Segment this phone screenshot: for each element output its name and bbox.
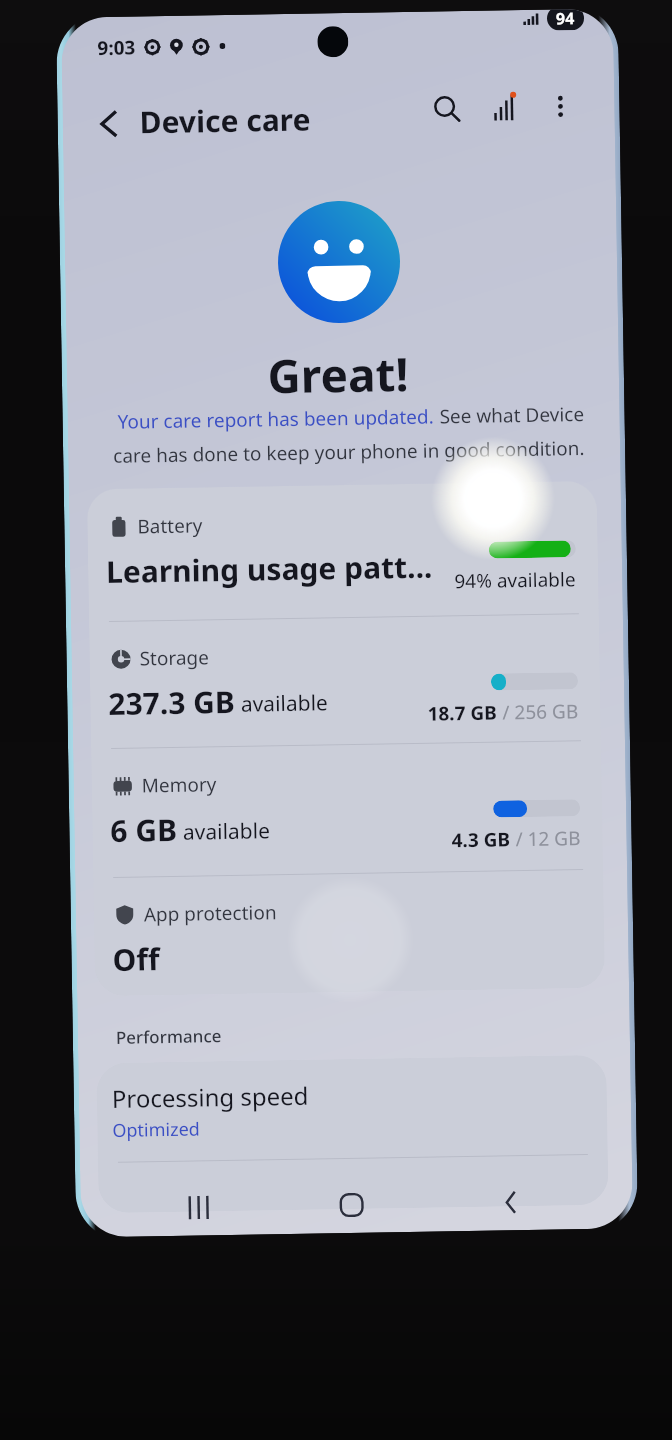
staticText: 9:03 [97,34,136,61]
staticText: 6 GB [110,809,178,851]
button[interactable]: Processing speed [96,1055,608,1162]
button[interactable]: Home [323,1176,380,1233]
staticText: Battery [137,512,203,539]
button[interactable]: Search [420,82,473,135]
staticText: care has done to keep your phone in good… [113,435,585,469]
button[interactable]: Back [482,1174,539,1231]
staticText: available [235,688,329,719]
staticText: See what Device [434,401,585,429]
staticText: / 256 GB [497,698,579,725]
staticText: Great! [66,338,614,411]
staticText: 237.3 GB [108,681,236,724]
staticText: 4.3 GB [451,826,511,853]
staticText: Storage [139,644,210,671]
button[interactable]: More options [536,82,585,131]
staticText: Memory [141,771,217,798]
button[interactable]: Battery [87,481,599,621]
staticText: Device care [139,98,311,142]
staticText: 94% available [454,566,576,594]
staticText: Learning usage patt... [106,546,433,592]
staticText: App protection [144,899,277,927]
button[interactable]: Recents [170,1179,227,1236]
staticText: 94 [556,9,575,29]
staticText: / 12 GB [510,825,581,852]
button[interactable]: Memory [91,740,603,877]
staticText: Off [112,938,160,980]
staticText: Performance [116,1024,222,1049]
button[interactable]: Storage [89,613,601,748]
staticText: Your care report has been updated. [117,403,435,435]
staticText: Processing speed [112,1079,309,1115]
staticText: 18.7 GB [427,699,498,727]
button[interactable]: Navigate up [84,99,133,148]
button[interactable]: Usage statistics [478,81,531,134]
staticText: available [177,816,271,847]
button[interactable]: App protection [93,869,605,996]
staticText: Optimized [112,1116,201,1143]
